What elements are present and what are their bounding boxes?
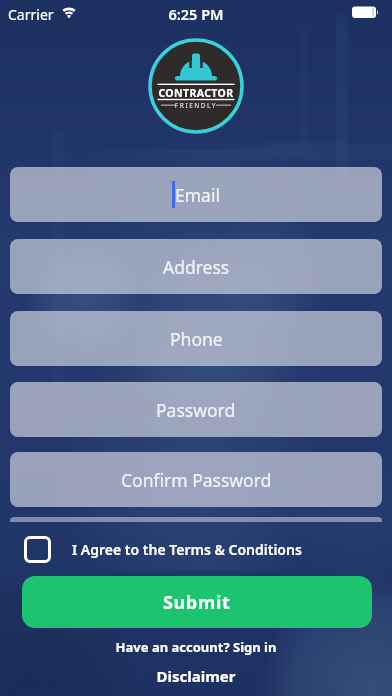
- staticText: Carrier: [8, 5, 54, 24]
- button[interactable]: Password: [10, 382, 382, 437]
- staticText: CONTRACTOR: [148, 86, 244, 100]
- staticText: 6:25 PM: [0, 4, 392, 24]
- staticText: Password: [156, 398, 236, 422]
- staticText: Address: [163, 255, 230, 279]
- button[interactable]: Phone: [10, 311, 382, 366]
- button[interactable]: I Agree to the Terms & Conditions: [24, 536, 302, 563]
- button[interactable]: Confirm Password: [10, 452, 382, 507]
- button[interactable]: Submit: [22, 576, 372, 628]
- staticText: Submit: [163, 590, 231, 615]
- button[interactable]: Disclaimer: [0, 666, 392, 686]
- staticText: Email: [175, 183, 220, 207]
- staticText: Confirm Password: [121, 468, 272, 492]
- button[interactable]: Have an account? Sign in: [0, 638, 392, 656]
- staticText: FRIENDLY: [148, 101, 244, 110]
- staticText: Phone: [170, 327, 223, 351]
- button[interactable]: Email: [10, 167, 382, 222]
- staticText: I Agree to the Terms & Conditions: [72, 540, 302, 559]
- button[interactable]: Address: [10, 239, 382, 294]
